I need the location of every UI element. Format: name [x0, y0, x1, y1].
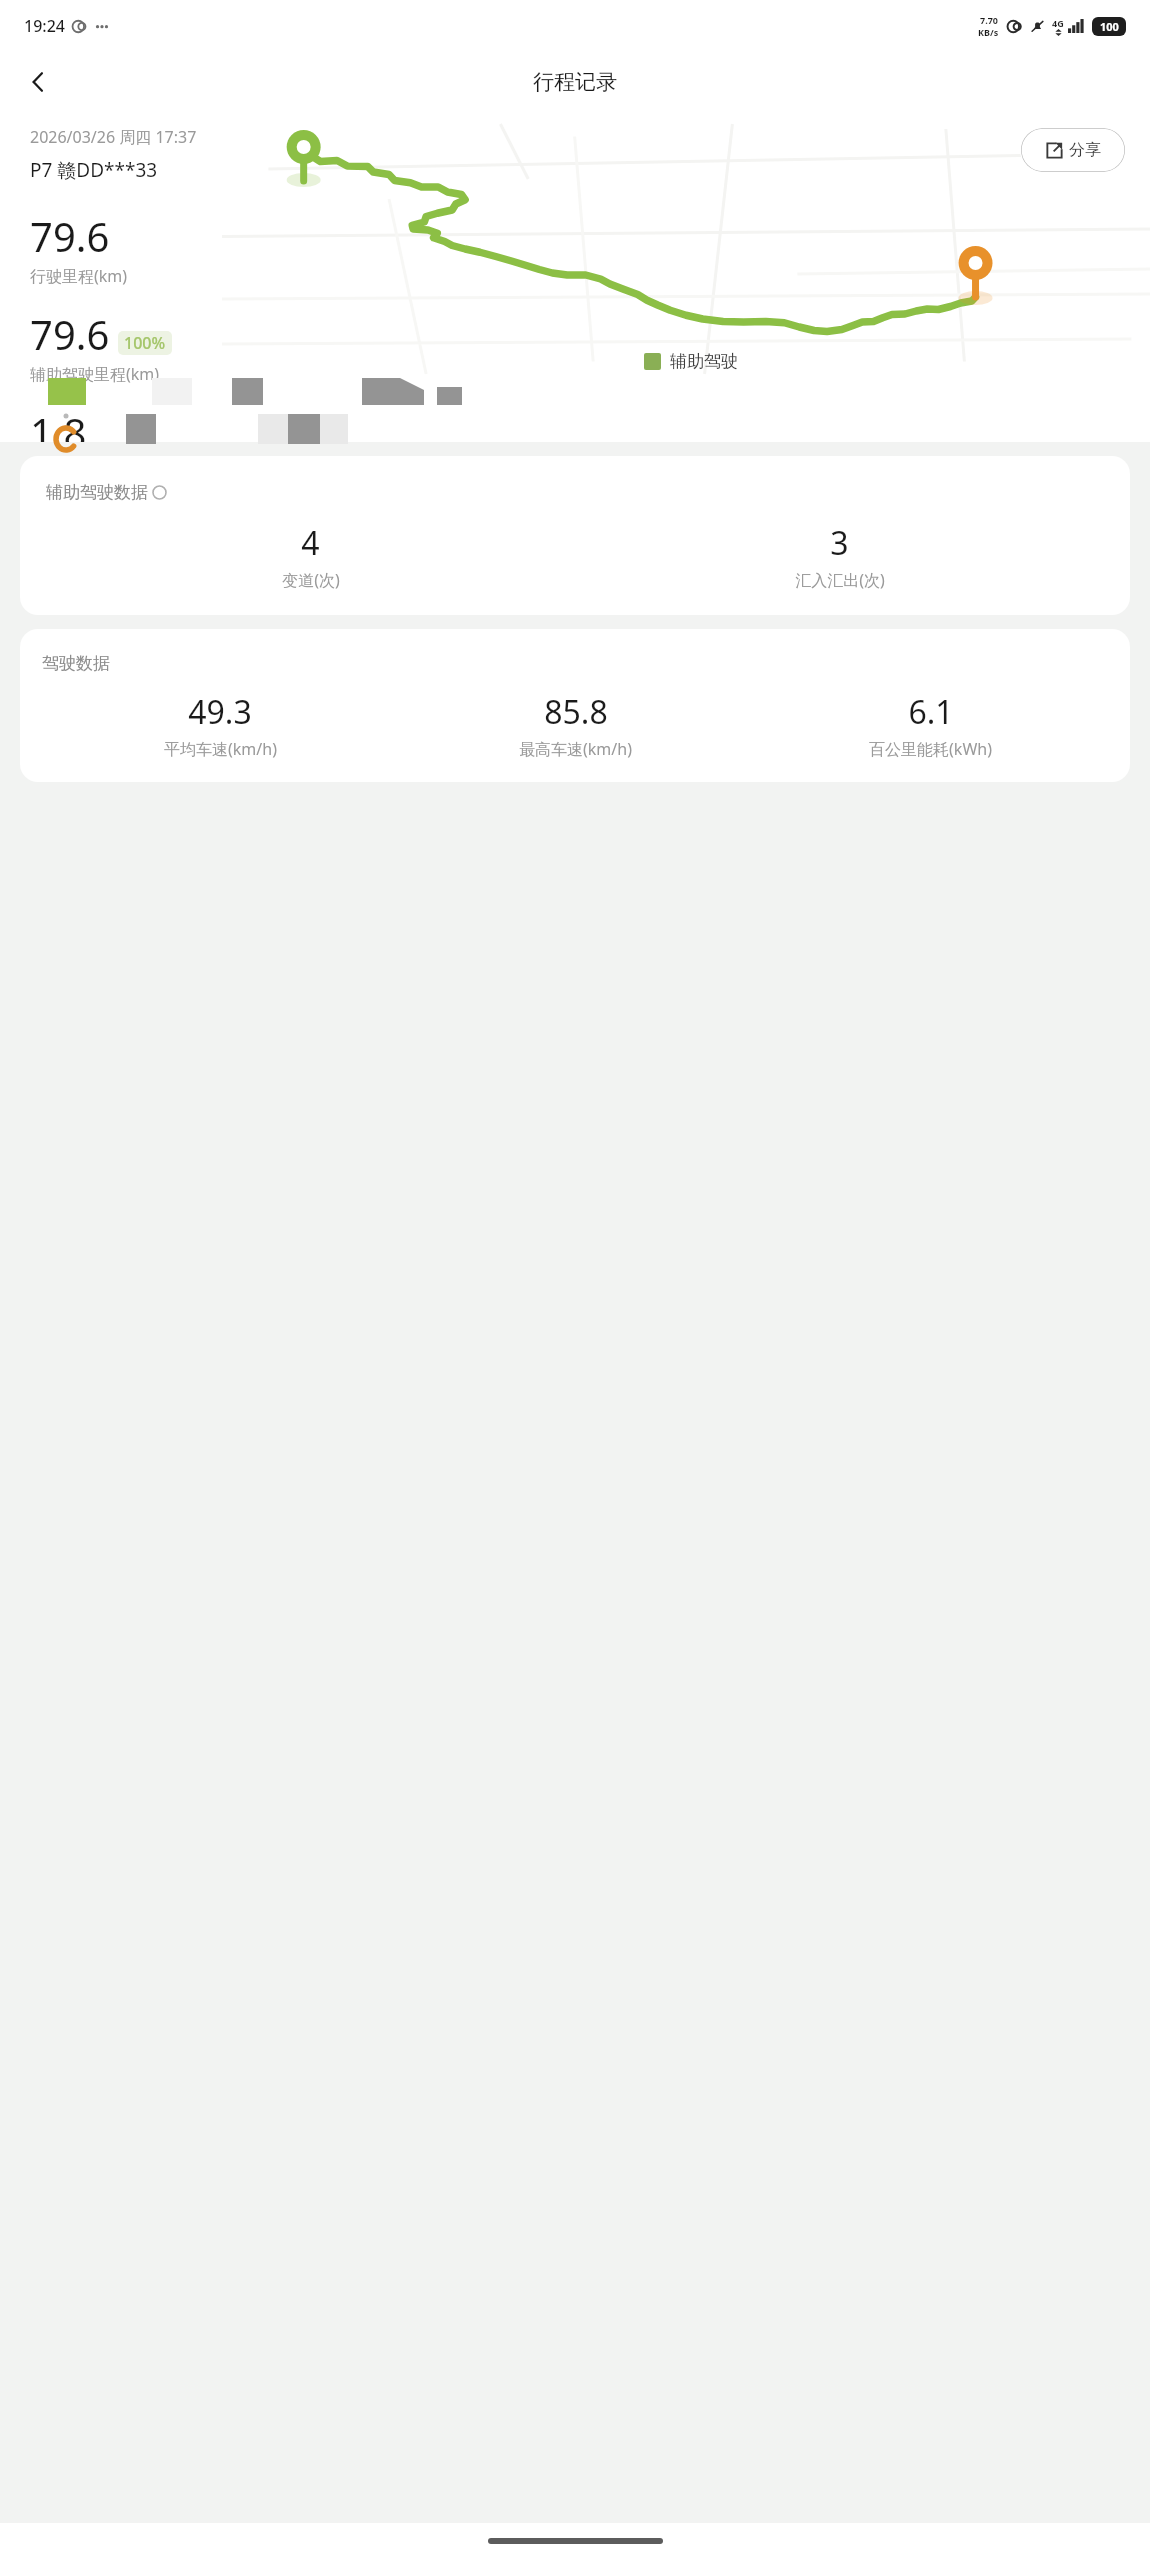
- staticText: 驾驶数据: [42, 653, 110, 674]
- staticText: 19:24: [24, 15, 65, 37]
- staticText: 4G: [1052, 17, 1064, 29]
- staticText: 变道(次): [282, 569, 340, 591]
- staticText: 百公里能耗(kWh): [869, 738, 992, 760]
- staticText: 辅助驾驶: [670, 351, 738, 372]
- staticText: 汇入汇出(次): [795, 569, 885, 591]
- staticText: 平均车速(km/h): [164, 738, 277, 760]
- staticText: KB/s: [978, 26, 999, 38]
- staticText: 85.8: [544, 690, 608, 734]
- staticText: 最高车速(km/h): [519, 738, 632, 760]
- staticText: 2026/03/26 周四 17:37: [30, 126, 197, 148]
- staticText: 辅助驾驶数据: [46, 482, 148, 503]
- button[interactable]: Back: [10, 54, 66, 110]
- staticText: 79.6: [30, 209, 110, 263]
- button[interactable]: 辅助驾驶数据: [20, 456, 1130, 615]
- staticText: 79.6: [30, 307, 110, 361]
- staticText: 分享: [1069, 140, 1101, 160]
- staticText: 辅助驾驶里程(km): [30, 363, 160, 385]
- staticText: 100%: [124, 332, 166, 354]
- staticText: 行驶里程(km): [30, 265, 128, 287]
- staticText: 1.8: [30, 405, 87, 442]
- button[interactable]: 分享: [1020, 128, 1126, 172]
- staticText: 100: [1100, 19, 1119, 34]
- staticText: 6.1: [908, 690, 954, 734]
- button[interactable]: 驾驶数据: [20, 629, 1130, 782]
- staticText: 49.3: [188, 690, 252, 734]
- staticText: 行程记录: [533, 69, 617, 95]
- staticText: 7.70: [980, 14, 998, 26]
- staticText: 4: [301, 521, 320, 565]
- staticText: P7 赣DD***33: [30, 157, 158, 183]
- staticText: 3: [830, 521, 849, 565]
